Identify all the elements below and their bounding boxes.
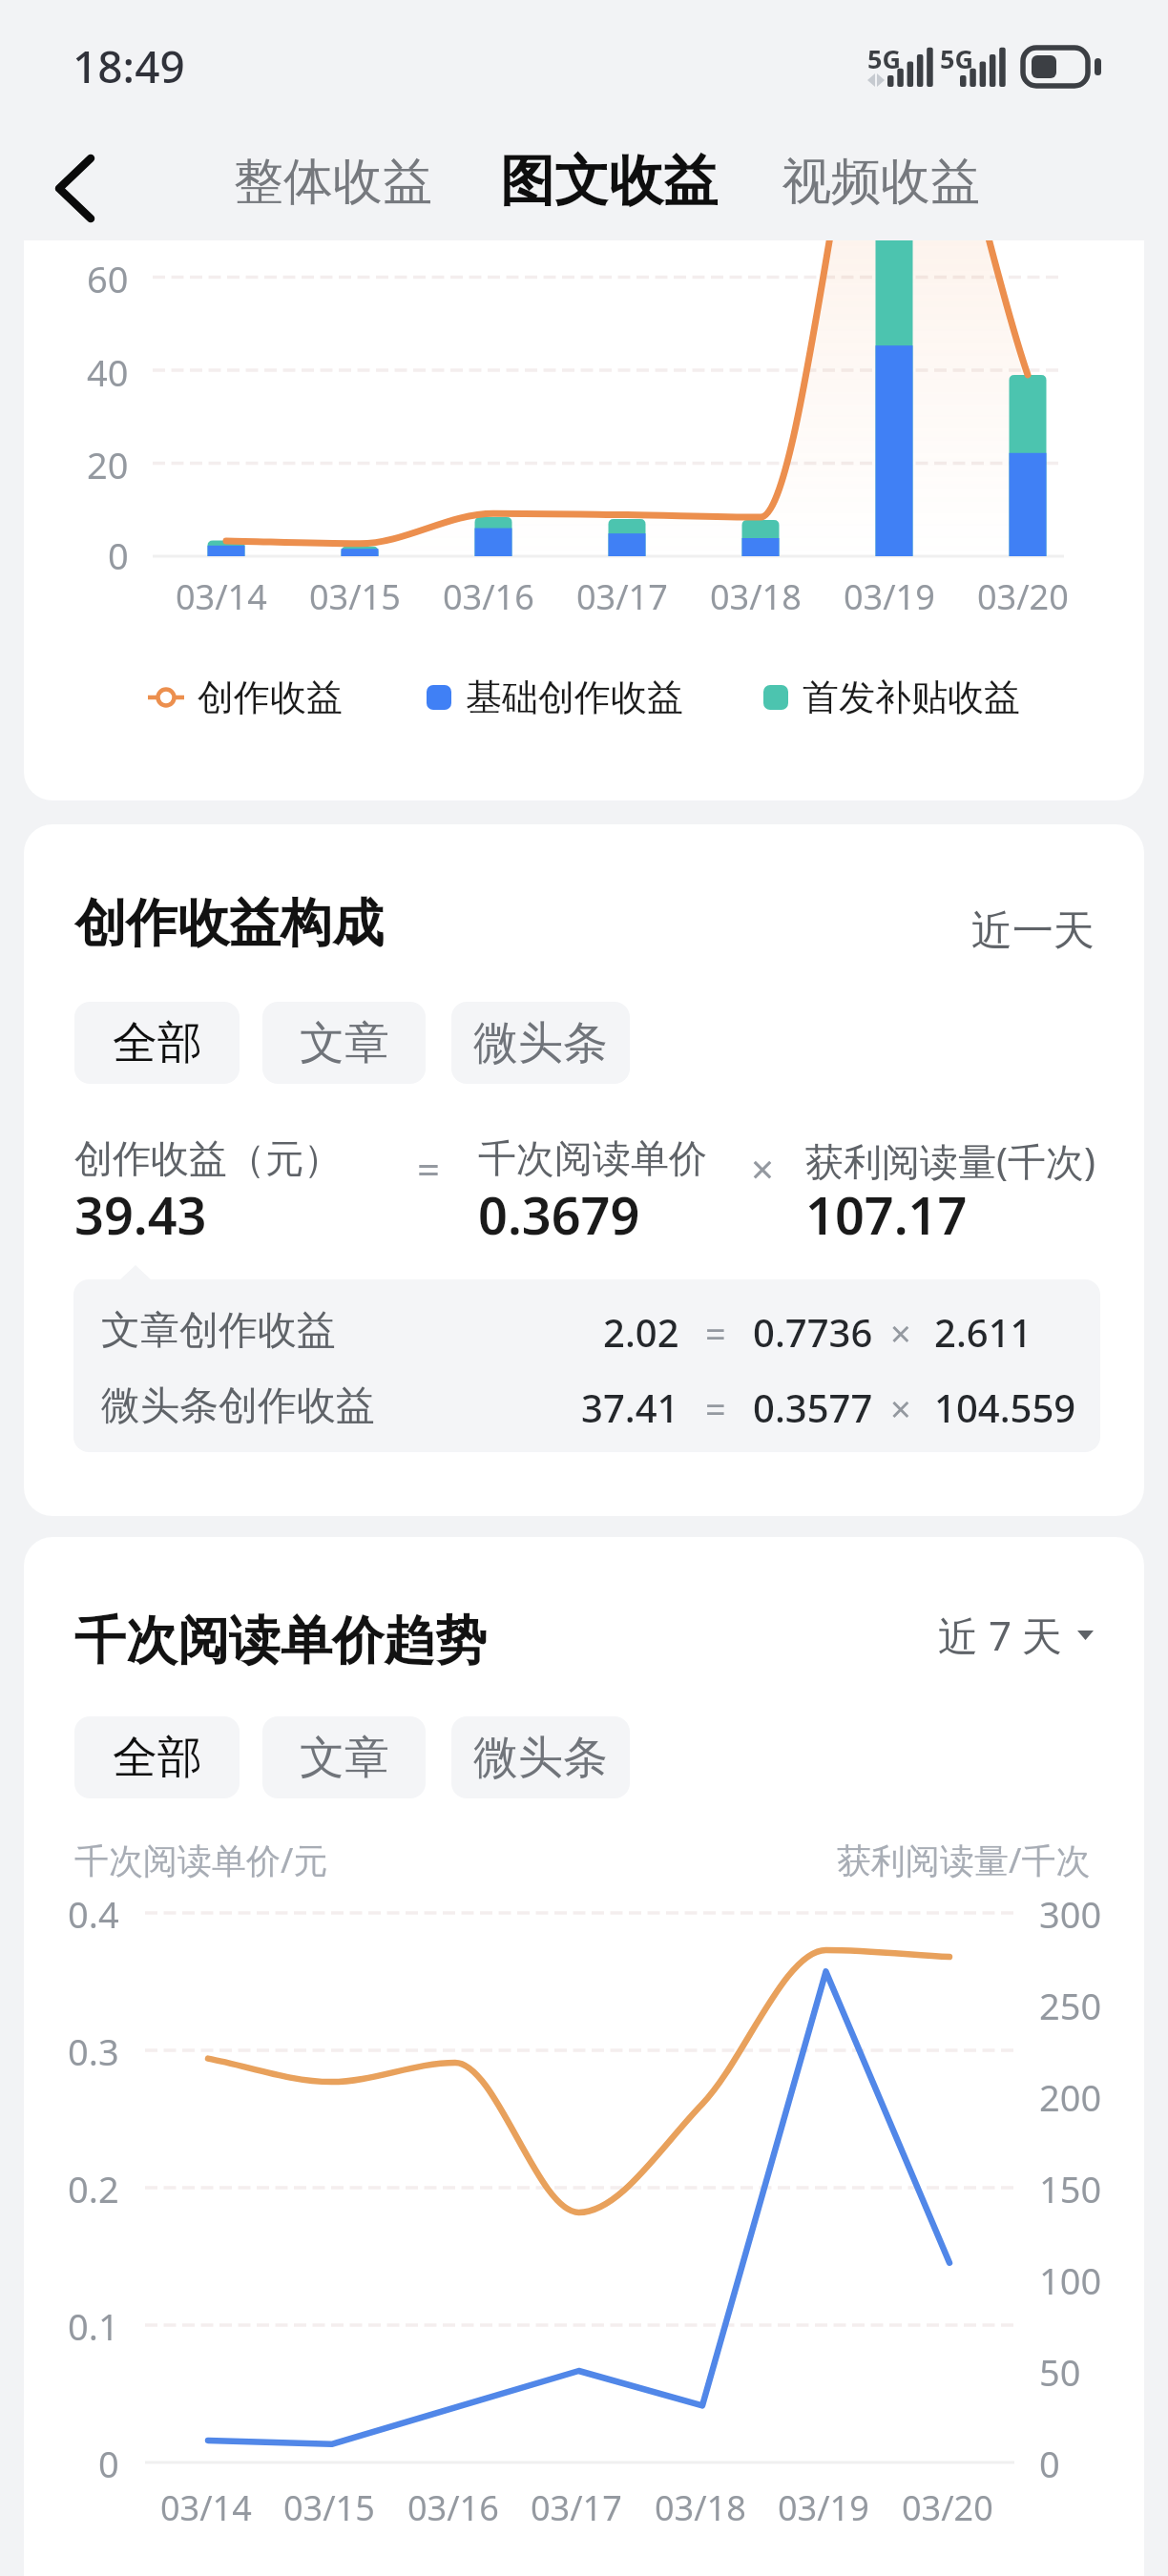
staticText: 0.1 — [68, 2301, 119, 2351]
staticText: 2.02 — [603, 1306, 679, 1358]
staticText: 千次阅读单价 — [478, 1134, 707, 1182]
staticText: 微头条 — [473, 1015, 608, 1071]
button[interactable]: 近一天 — [964, 900, 1102, 963]
staticText: 104.559 — [934, 1381, 1076, 1433]
staticText: 03/17 — [531, 2484, 622, 2531]
staticText: = — [705, 1308, 726, 1358]
staticText: 250 — [1039, 1981, 1102, 2030]
staticText: 0.3577 — [753, 1381, 873, 1433]
staticText: = — [417, 1141, 441, 1195]
button[interactable]: 整体收益 — [228, 145, 438, 219]
staticText: 20 — [87, 440, 129, 489]
staticText: 0 — [98, 2439, 119, 2488]
staticText: 图文收益 — [500, 147, 718, 216]
staticText: 37.41 — [581, 1381, 679, 1433]
staticText: 近 7 天 — [938, 1608, 1062, 1662]
button[interactable]: 首发补贴收益 — [763, 675, 1020, 720]
button[interactable]: Back — [34, 141, 115, 235]
staticText: 100 — [1039, 2255, 1102, 2305]
staticText: 60 — [87, 254, 129, 303]
staticText: 0.4 — [68, 1889, 119, 1939]
staticText: 全部 — [113, 1015, 202, 1071]
staticText: 39.43 — [74, 1179, 207, 1250]
staticText: 视频收益 — [782, 151, 980, 214]
staticText: 0 — [108, 530, 129, 580]
staticText: 2.611 — [934, 1306, 1032, 1358]
button[interactable]: 微头条 — [451, 1002, 630, 1084]
staticText: × — [890, 1383, 911, 1433]
staticText: 03/18 — [655, 2484, 746, 2531]
staticText: 0.2 — [68, 2164, 119, 2213]
staticText: 创作收益（元） — [74, 1134, 342, 1182]
staticText: 150 — [1039, 2164, 1102, 2213]
staticText: 文章 — [300, 1015, 389, 1071]
staticText: × — [751, 1141, 775, 1195]
staticText: 03/15 — [283, 2484, 375, 2531]
staticText: 50 — [1039, 2347, 1081, 2397]
staticText: 200 — [1039, 2072, 1102, 2122]
staticText: 整体收益 — [234, 151, 432, 214]
button[interactable]: 文章 — [262, 1716, 426, 1798]
staticText: 03/18 — [710, 573, 802, 620]
button[interactable]: 全部 — [74, 1716, 240, 1798]
staticText: 微头条创作收益 — [101, 1381, 375, 1431]
staticText: 03/17 — [576, 573, 668, 620]
staticText: 获利阅读量(千次) — [805, 1134, 1095, 1187]
staticText: 03/14 — [176, 573, 267, 620]
staticText: 5G — [940, 41, 973, 76]
staticText: 03/15 — [309, 573, 401, 620]
staticText: 0 — [1039, 2439, 1060, 2488]
staticText: 03/14 — [160, 2484, 252, 2531]
staticText: 基础创作收益 — [466, 675, 683, 720]
staticText: 18:49 — [73, 36, 185, 96]
staticText: 03/19 — [778, 2484, 869, 2531]
button[interactable]: 全部 — [74, 1002, 240, 1084]
staticText: = — [705, 1383, 726, 1433]
staticText: 03/20 — [902, 2484, 993, 2531]
button[interactable]: 创作收益 — [148, 675, 343, 720]
staticText: 文章创作收益 — [101, 1306, 336, 1356]
staticText: 0.3 — [68, 2026, 119, 2076]
staticText: 03/16 — [407, 2484, 499, 2531]
staticText: 5G — [867, 41, 901, 76]
staticText: 获利阅读量/千次 — [837, 1837, 1091, 1883]
staticText: 107.17 — [805, 1179, 968, 1250]
button[interactable]: 基础创作收益 — [427, 675, 683, 720]
staticText: 0.3679 — [478, 1179, 640, 1250]
staticText: 创作收益构成 — [74, 891, 384, 956]
staticText: 全部 — [113, 1730, 202, 1786]
staticText: 微头条 — [473, 1730, 608, 1786]
staticText: 03/19 — [844, 573, 935, 620]
staticText: 近一天 — [971, 905, 1095, 957]
staticText: 03/16 — [443, 573, 534, 620]
staticText: 300 — [1039, 1889, 1102, 1939]
staticText: 0.7736 — [753, 1306, 873, 1358]
staticText: 首发补贴收益 — [803, 675, 1020, 720]
staticText: 03/20 — [977, 573, 1069, 620]
staticText: × — [890, 1308, 911, 1358]
staticText: 40 — [87, 347, 129, 397]
staticText: 文章 — [300, 1730, 389, 1786]
button[interactable]: 视频收益 — [776, 145, 986, 219]
button[interactable]: 近 7 天 — [932, 1602, 1099, 1668]
staticText: 创作收益 — [198, 675, 343, 720]
button[interactable]: 文章 — [262, 1002, 426, 1084]
staticText: 千次阅读单价/元 — [74, 1837, 328, 1883]
button[interactable]: 图文收益 — [490, 141, 728, 221]
button[interactable]: 微头条 — [451, 1716, 630, 1798]
staticText: 千次阅读单价趋势 — [74, 1609, 487, 1673]
